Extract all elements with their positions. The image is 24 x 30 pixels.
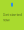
- staticText: Get started now: [2, 12, 21, 22]
